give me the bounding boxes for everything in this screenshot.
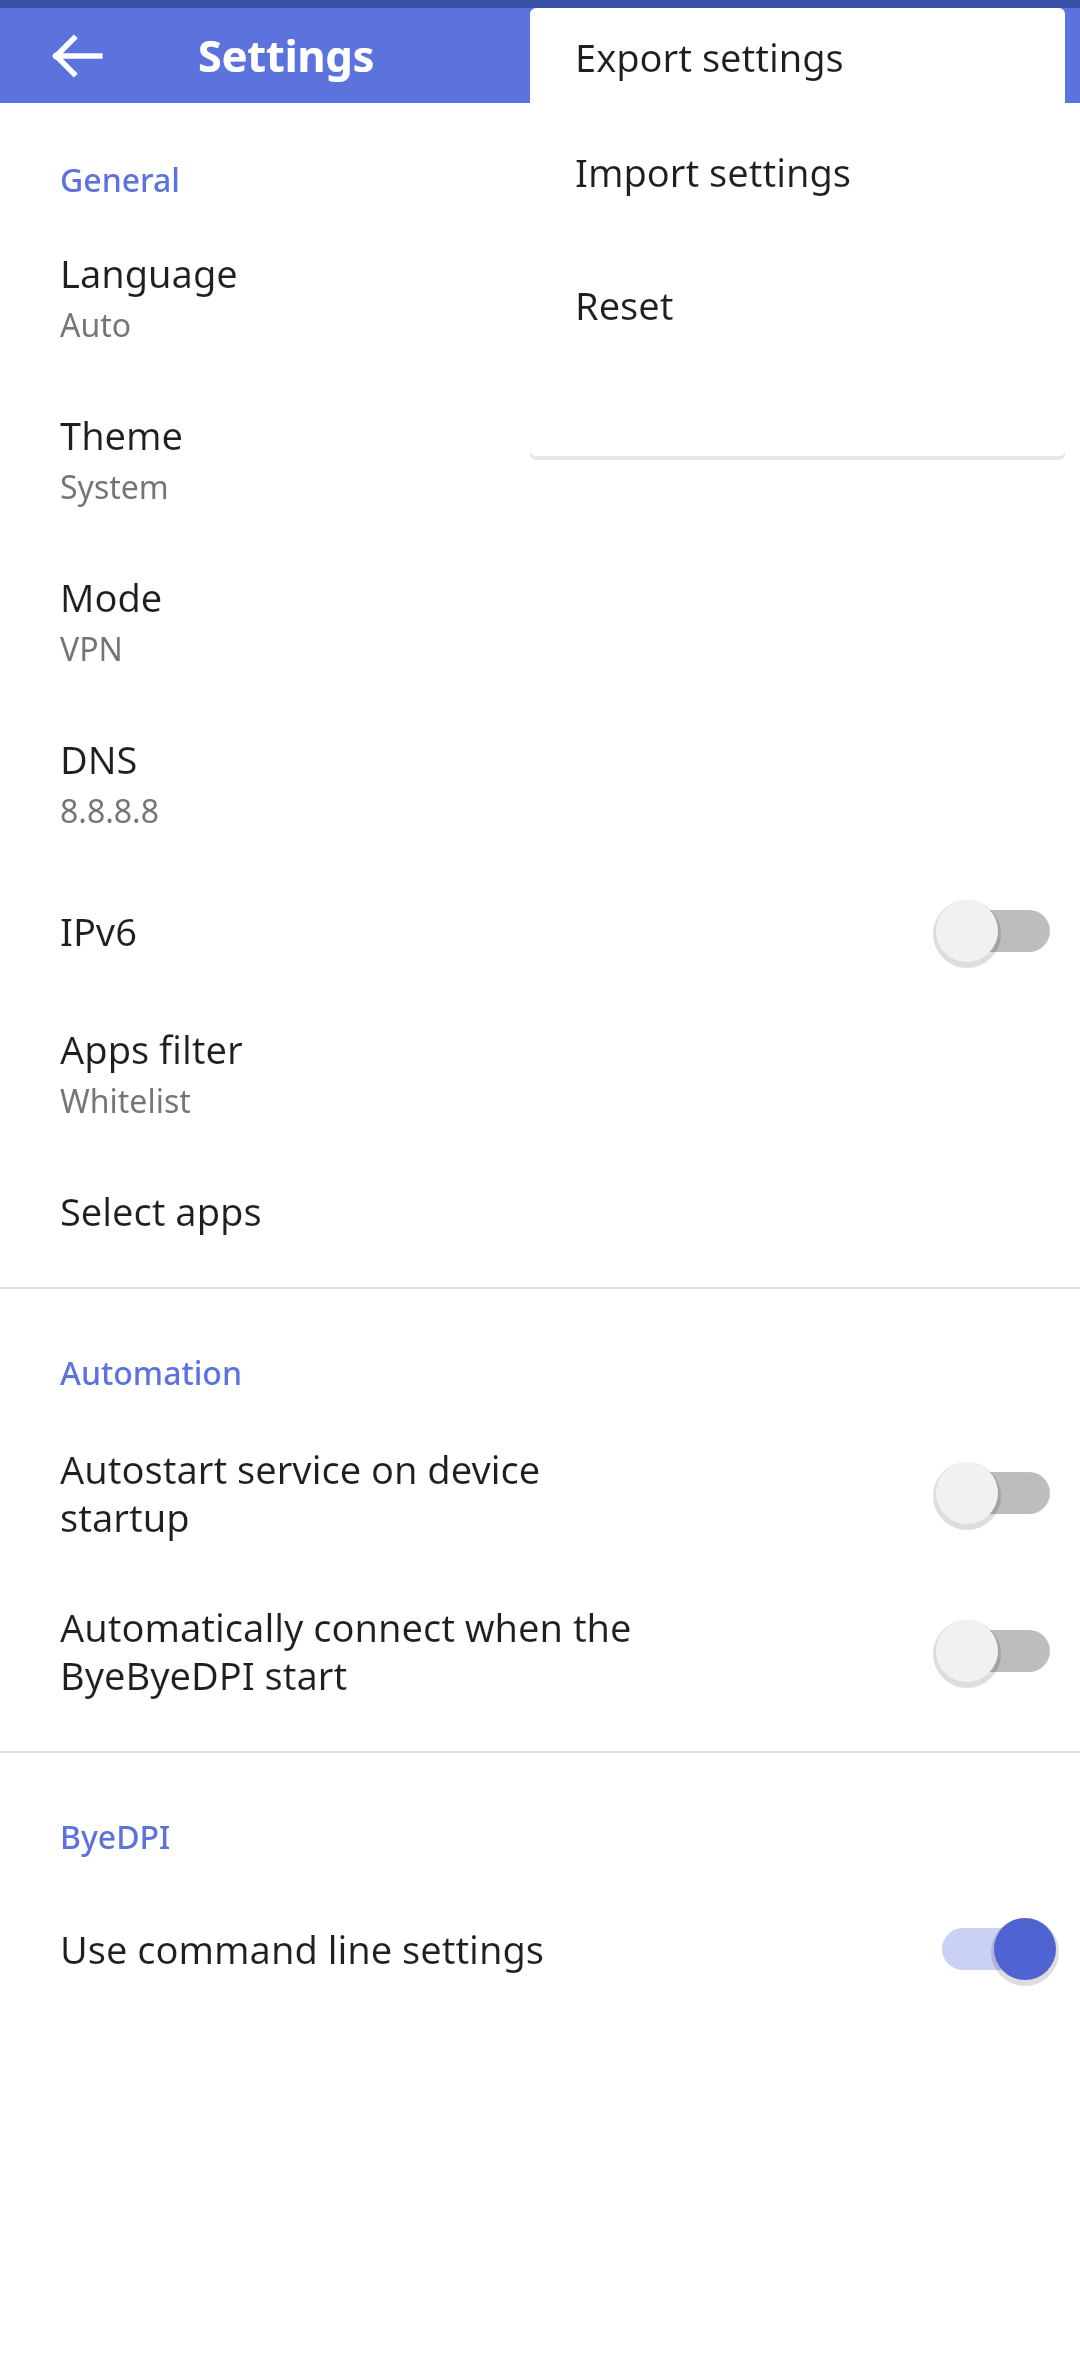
staticText: Autostart service on device startup [60,1443,673,1543]
staticText: Whitelist [60,1079,191,1123]
staticText: Settings [198,26,375,85]
button[interactable]: DNS [0,733,1080,833]
staticText: Auto [60,303,132,347]
staticText: General [60,158,180,202]
staticText: ByeDPI [60,1815,171,1859]
button[interactable]: Reset [530,238,1065,371]
staticText: Reset [575,279,674,331]
button[interactable]: Import settings [530,105,1065,238]
staticText: Mode [60,571,777,623]
staticText: Import settings [575,146,851,198]
staticText: VPN [60,627,123,671]
button[interactable]: Mode [0,571,1080,671]
button[interactable]: Language [0,247,1080,347]
staticText: Select apps [60,1185,777,1237]
button[interactable]: IPv6 [0,891,1080,971]
button[interactable]: Autostart service on device startup [0,1443,1080,1543]
staticText: System [60,465,169,509]
staticText: Automatically connect when the ByeByeDPI… [60,1601,743,1701]
button[interactable]: Use command line settings [0,1909,1080,1989]
staticText: Automation [60,1351,242,1395]
staticText: Theme [60,409,777,461]
button[interactable]: Back [30,8,126,103]
staticText: 8.8.8.8 [60,789,159,833]
staticText: IPv6 [60,905,691,957]
staticText: Use command line settings [60,1923,691,1975]
button[interactable]: Select apps [0,1185,1080,1237]
staticText: Export settings [575,31,844,83]
staticText: DNS [60,733,777,785]
staticText: Language [60,247,777,299]
button[interactable]: Export settings [530,8,1065,105]
staticText: Apps filter [60,1023,777,1075]
button[interactable]: Apps filter [0,1023,1080,1123]
button[interactable]: Automatically connect when the ByeByeDPI… [0,1601,1080,1701]
button[interactable]: Theme [0,409,1080,509]
